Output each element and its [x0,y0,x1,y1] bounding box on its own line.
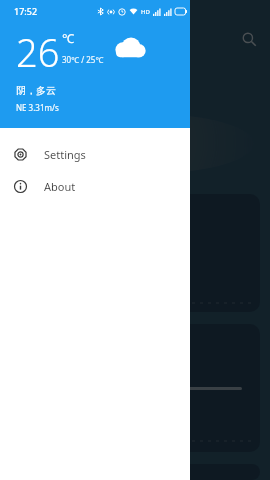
button[interactable]: 123 [18,464,260,480]
button[interactable]: About [0,170,190,202]
staticText: HD [141,8,150,16]
staticText: 30℃ / 25℃ [62,54,104,65]
staticText: ℃ [62,30,74,46]
button[interactable]: 09:00 下午 [18,194,260,312]
button[interactable]: set 07:31 下午 [18,324,260,452]
staticText: Settings [44,147,86,162]
button[interactable]: Settings [0,138,190,170]
staticText: 17:52 [14,5,38,17]
staticText: 阴，多云 [16,84,56,97]
button[interactable]: Search [236,26,262,52]
staticText: 26 [16,26,60,78]
staticText: About [44,179,76,194]
staticText: NE 3.31m/s [16,102,59,113]
